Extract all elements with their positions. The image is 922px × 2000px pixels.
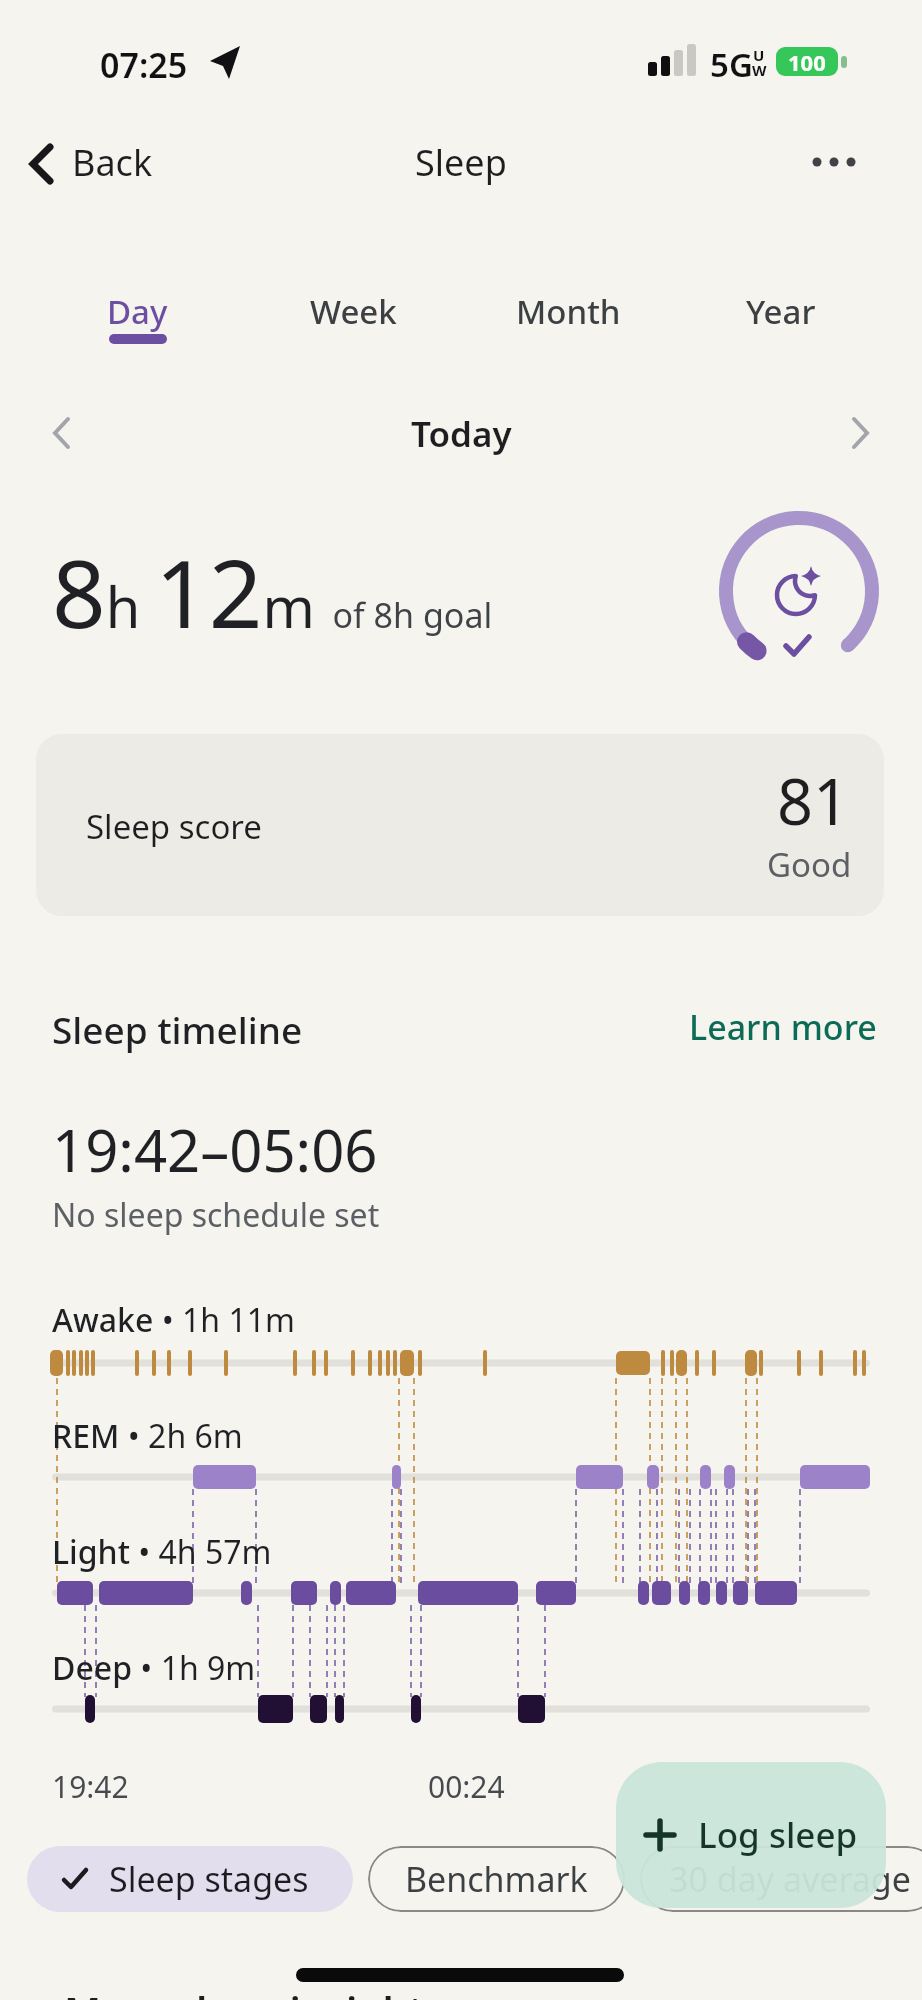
- button[interactable]: Sleep stages: [27, 1846, 353, 1912]
- staticText: 5G: [710, 42, 753, 87]
- button[interactable]: Week: [293, 282, 413, 340]
- staticText: 8h 12m of 8h goal: [52, 528, 493, 656]
- staticText: More sleep insights: [64, 1983, 444, 2000]
- staticText: 30 day average: [669, 1856, 911, 1902]
- staticText: Sleep timeline: [52, 1004, 303, 1054]
- staticText: W: [752, 60, 767, 80]
- staticText: Learn more: [689, 1004, 877, 1050]
- staticText: Sleep: [415, 138, 507, 187]
- staticText: No sleep schedule set: [52, 1193, 380, 1237]
- staticText: REM • 2h 6m: [52, 1414, 243, 1458]
- staticText: U: [753, 45, 765, 65]
- staticText: Year: [746, 289, 816, 334]
- staticText: Awake • 1h 11m: [52, 1298, 295, 1342]
- staticText: 19:42–05:06: [52, 1110, 378, 1189]
- staticText: Sleep score: [86, 804, 262, 849]
- button[interactable]: [800, 140, 870, 186]
- staticText: 07:25: [100, 42, 188, 88]
- button[interactable]: Learn more: [590, 1000, 890, 1054]
- button[interactable]: [836, 408, 888, 460]
- button[interactable]: Day: [77, 282, 197, 340]
- staticText: Good: [767, 842, 852, 887]
- staticText: 100: [788, 47, 826, 76]
- staticText: Day: [107, 289, 168, 334]
- staticText: Month: [516, 289, 621, 334]
- button[interactable]: 30 day average: [640, 1846, 922, 1912]
- staticText: Today: [411, 410, 512, 458]
- staticText: 81: [777, 758, 850, 844]
- staticText: 00:24: [428, 1766, 505, 1807]
- button[interactable]: Year: [721, 282, 841, 340]
- staticText: Light • 4h 57m: [52, 1530, 272, 1574]
- button[interactable]: Sleep score: [36, 734, 884, 916]
- staticText: Sleep stages: [109, 1856, 309, 1902]
- staticText: Back: [72, 138, 153, 187]
- button[interactable]: Back: [20, 136, 170, 192]
- staticText: Week: [310, 289, 397, 334]
- button[interactable]: Month: [508, 282, 628, 340]
- staticText: Deep • 1h 9m: [52, 1646, 256, 1690]
- button[interactable]: Benchmark: [368, 1846, 625, 1912]
- button[interactable]: Log sleep: [616, 1762, 886, 1908]
- staticText: Benchmark: [405, 1856, 588, 1902]
- button[interactable]: [36, 408, 88, 460]
- staticText: 19:42: [52, 1766, 129, 1807]
- staticText: Log sleep: [698, 1811, 858, 1859]
